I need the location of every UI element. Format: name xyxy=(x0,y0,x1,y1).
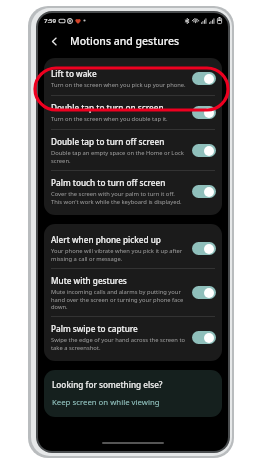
button[interactable]: Palm touch to turn off screen xyxy=(44,171,222,211)
button[interactable]: Toggle on xyxy=(192,185,216,198)
button[interactable]: Toggle on xyxy=(192,286,216,299)
button[interactable]: Back xyxy=(45,32,63,50)
button[interactable]: Toggle on xyxy=(192,242,216,255)
staticText: 7:59 xyxy=(44,17,56,25)
button[interactable]: Toggle on xyxy=(192,144,216,157)
staticText: Motions and gestures xyxy=(70,34,180,48)
staticText: Double tap to turn off screen xyxy=(51,136,165,147)
button[interactable]: Mute with gestures xyxy=(44,269,222,316)
staticText: Mute with gestures xyxy=(51,275,127,286)
staticText: Cover the screen with your palm to turn … xyxy=(51,190,186,205)
staticText: Turn on the screen when you pick up your… xyxy=(51,81,186,89)
staticText: Swipe the edge of your hand across the s… xyxy=(51,336,186,351)
staticText: Looking for something else? xyxy=(52,379,163,390)
staticText: Turn on the screen when you double tap i… xyxy=(51,115,168,123)
button[interactable]: Toggle on xyxy=(192,106,216,119)
staticText: Lift to wake xyxy=(51,68,97,79)
button[interactable]: Double tap to turn off screen xyxy=(44,130,222,170)
button[interactable]: Alert when phone picked up xyxy=(44,228,222,268)
staticText: Palm swipe to capture xyxy=(51,323,138,334)
button[interactable]: Toggle on xyxy=(192,72,216,85)
staticText: Double tap an empty space on the Home or… xyxy=(51,149,186,164)
staticText: Your phone will vibrate when you pick it… xyxy=(51,247,186,262)
button[interactable]: Toggle on xyxy=(192,331,216,344)
button[interactable]: Lift to wake xyxy=(44,62,222,95)
button[interactable]: Palm swipe to capture xyxy=(44,317,222,357)
button[interactable]: Keep screen on while viewing xyxy=(52,397,160,408)
staticText: Mute incoming calls and alarms by puttin… xyxy=(51,288,186,310)
staticText: Double tap to turn on screen xyxy=(51,102,164,113)
staticText: Keep screen on while viewing xyxy=(52,397,160,408)
staticText: Palm touch to turn off screen xyxy=(51,177,166,188)
button[interactable]: Double tap to turn on screen xyxy=(44,96,222,129)
staticText: Alert when phone picked up xyxy=(51,234,161,245)
